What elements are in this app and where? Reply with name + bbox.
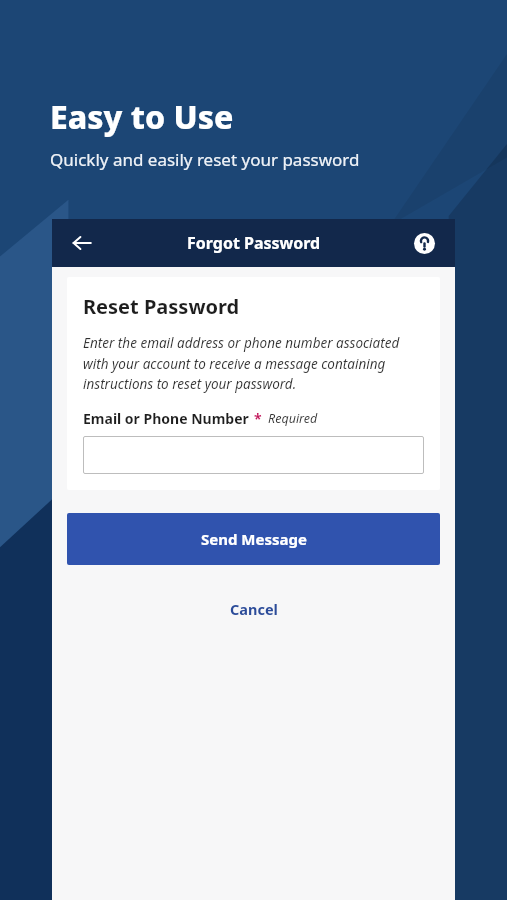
staticText: Enter the email address or phone number … (83, 334, 424, 393)
staticText: Reset Password (83, 293, 240, 320)
button[interactable]: Help (407, 226, 441, 260)
button[interactable]: Cancel (52, 592, 455, 626)
staticText: Easy to Use (50, 95, 234, 139)
button[interactable]: Email or Phone Number field (83, 436, 424, 474)
button[interactable]: Back (64, 225, 100, 261)
staticText: Cancel (230, 599, 278, 619)
staticText: * (254, 409, 262, 428)
staticText: Email or Phone Number (83, 409, 249, 428)
button[interactable]: Send Message (67, 513, 440, 565)
staticText: Forgot Password (187, 232, 321, 254)
staticText: Send Message (201, 529, 307, 549)
staticText: Required (268, 410, 318, 427)
staticText: Quickly and easily reset your password (50, 148, 360, 171)
